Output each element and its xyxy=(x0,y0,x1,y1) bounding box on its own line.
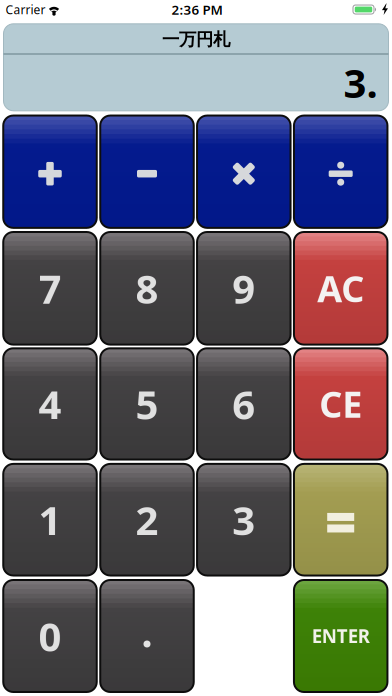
button[interactable]: ENTER xyxy=(294,580,387,692)
staticText: 1 xyxy=(38,493,61,546)
button[interactable]: 9 xyxy=(197,232,291,345)
button[interactable]: 1 xyxy=(3,464,97,575)
staticText: 2 xyxy=(135,493,158,546)
button[interactable]: divide xyxy=(294,115,387,228)
staticText: 7 xyxy=(38,262,61,315)
staticText: 6 xyxy=(232,377,255,430)
staticText: 2:36 PM xyxy=(171,1,222,18)
staticText: AC xyxy=(317,264,364,312)
button[interactable]: AC xyxy=(294,232,387,345)
button[interactable]: equals xyxy=(294,464,387,575)
button[interactable]: 2 xyxy=(100,464,194,575)
staticText: ENTER xyxy=(312,624,370,648)
button[interactable]: 6 xyxy=(197,348,291,459)
staticText: 5 xyxy=(135,377,158,430)
button[interactable]: decimal point xyxy=(100,580,194,692)
staticText: 0 xyxy=(38,609,61,662)
staticText: 3. xyxy=(343,56,377,109)
button[interactable]: add xyxy=(3,115,97,228)
button[interactable]: multiply xyxy=(197,115,291,228)
button[interactable]: CE xyxy=(294,348,387,459)
button[interactable]: 7 xyxy=(3,232,97,345)
button[interactable]: 3 xyxy=(197,464,291,575)
staticText: 8 xyxy=(135,262,158,315)
button[interactable]: 8 xyxy=(100,232,194,345)
staticText: 9 xyxy=(232,262,255,315)
button[interactable]: subtract xyxy=(100,115,194,228)
button[interactable]: 0 xyxy=(3,580,97,692)
staticText: 3 xyxy=(232,493,255,546)
staticText: Carrier xyxy=(5,1,45,17)
button[interactable]: 5 xyxy=(100,348,194,459)
button[interactable]: 4 xyxy=(3,348,97,459)
staticText: CE xyxy=(319,380,362,428)
staticText: 4 xyxy=(38,377,61,430)
staticText: 一万円札 xyxy=(162,29,230,50)
